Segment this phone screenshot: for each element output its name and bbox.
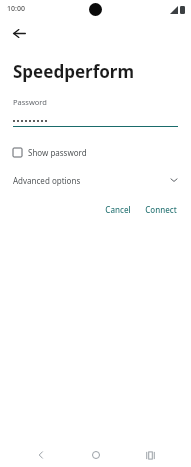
- button[interactable]: Advanced options: [0, 170, 191, 190]
- button[interactable]: Home: [83, 443, 109, 467]
- button[interactable]: Back: [28, 443, 54, 467]
- button[interactable]: Back: [6, 20, 32, 46]
- staticText: Cancel: [105, 204, 131, 215]
- button[interactable]: Connect: [140, 200, 182, 219]
- button[interactable]: Show password: [13, 147, 178, 158]
- button[interactable]: Password: [13, 97, 178, 127]
- staticText: Connect: [145, 204, 177, 215]
- staticText: Advanced options: [13, 175, 81, 186]
- staticText: 10:00: [7, 4, 25, 14]
- staticText: Speedperform: [13, 60, 135, 83]
- staticText: Show password: [28, 147, 87, 158]
- button[interactable]: Cancel: [100, 200, 136, 219]
- button[interactable]: Recent apps: [137, 443, 163, 467]
- staticText: Password: [13, 97, 47, 107]
